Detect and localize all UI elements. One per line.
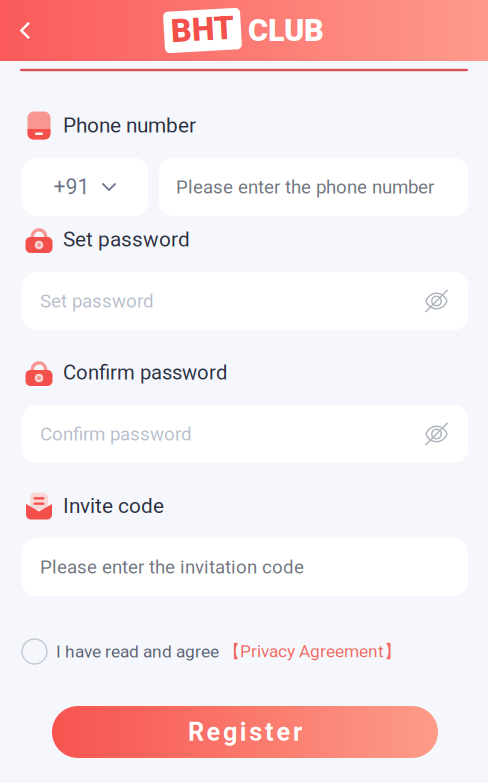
staticText: Phone number: [63, 113, 196, 138]
staticText: Confirm password: [40, 423, 192, 445]
staticText: BHT: [171, 11, 234, 48]
button[interactable]: +91: [22, 158, 148, 216]
button[interactable]: Set password: [22, 272, 468, 330]
button[interactable]: Please enter the invitation code: [22, 538, 468, 596]
button[interactable]: I have read and agree: [22, 634, 468, 668]
staticText: Please enter the phone number: [176, 176, 434, 198]
staticText: Invite code: [63, 494, 164, 518]
staticText: Set password: [63, 227, 190, 252]
staticText: 【Privacy Agreement】: [223, 641, 401, 662]
staticText: I have read and agree: [56, 641, 219, 662]
staticText: Set password: [40, 290, 154, 312]
staticText: Register: [188, 717, 302, 747]
staticText: Please enter the invitation code: [40, 556, 304, 578]
button[interactable]: Back: [0, 0, 50, 61]
staticText: Confirm password: [63, 361, 227, 384]
staticText: CLUB: [248, 12, 324, 48]
staticText: +91: [53, 174, 89, 199]
button[interactable]: Register: [52, 706, 438, 758]
button[interactable]: Please enter the phone number: [159, 158, 468, 216]
button[interactable]: Confirm password: [22, 405, 468, 463]
